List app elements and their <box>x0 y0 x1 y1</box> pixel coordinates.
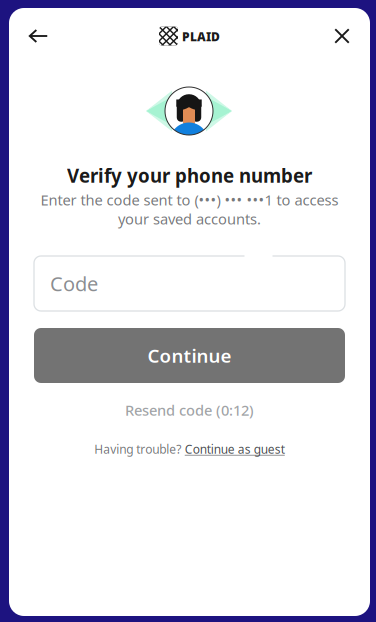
button[interactable]: Continue <box>34 328 345 383</box>
staticText: Verify your phone number <box>67 163 312 188</box>
staticText: your saved accounts. <box>118 209 261 228</box>
staticText: Resend code (0:12) <box>125 400 254 420</box>
staticText: Continue as guest <box>185 441 285 457</box>
button[interactable]: Close <box>320 14 364 58</box>
staticText: Enter the code sent to (•••) ••• •••1 to… <box>40 190 338 209</box>
button[interactable]: Continue as guest <box>185 441 285 457</box>
button[interactable]: Resend code (0:12) <box>9 399 370 421</box>
button[interactable]: Back <box>16 14 60 58</box>
staticText: PLAID <box>182 28 220 44</box>
staticText: Code <box>50 270 98 297</box>
staticText: Having trouble? <box>94 441 181 457</box>
staticText: Continue <box>147 343 231 368</box>
